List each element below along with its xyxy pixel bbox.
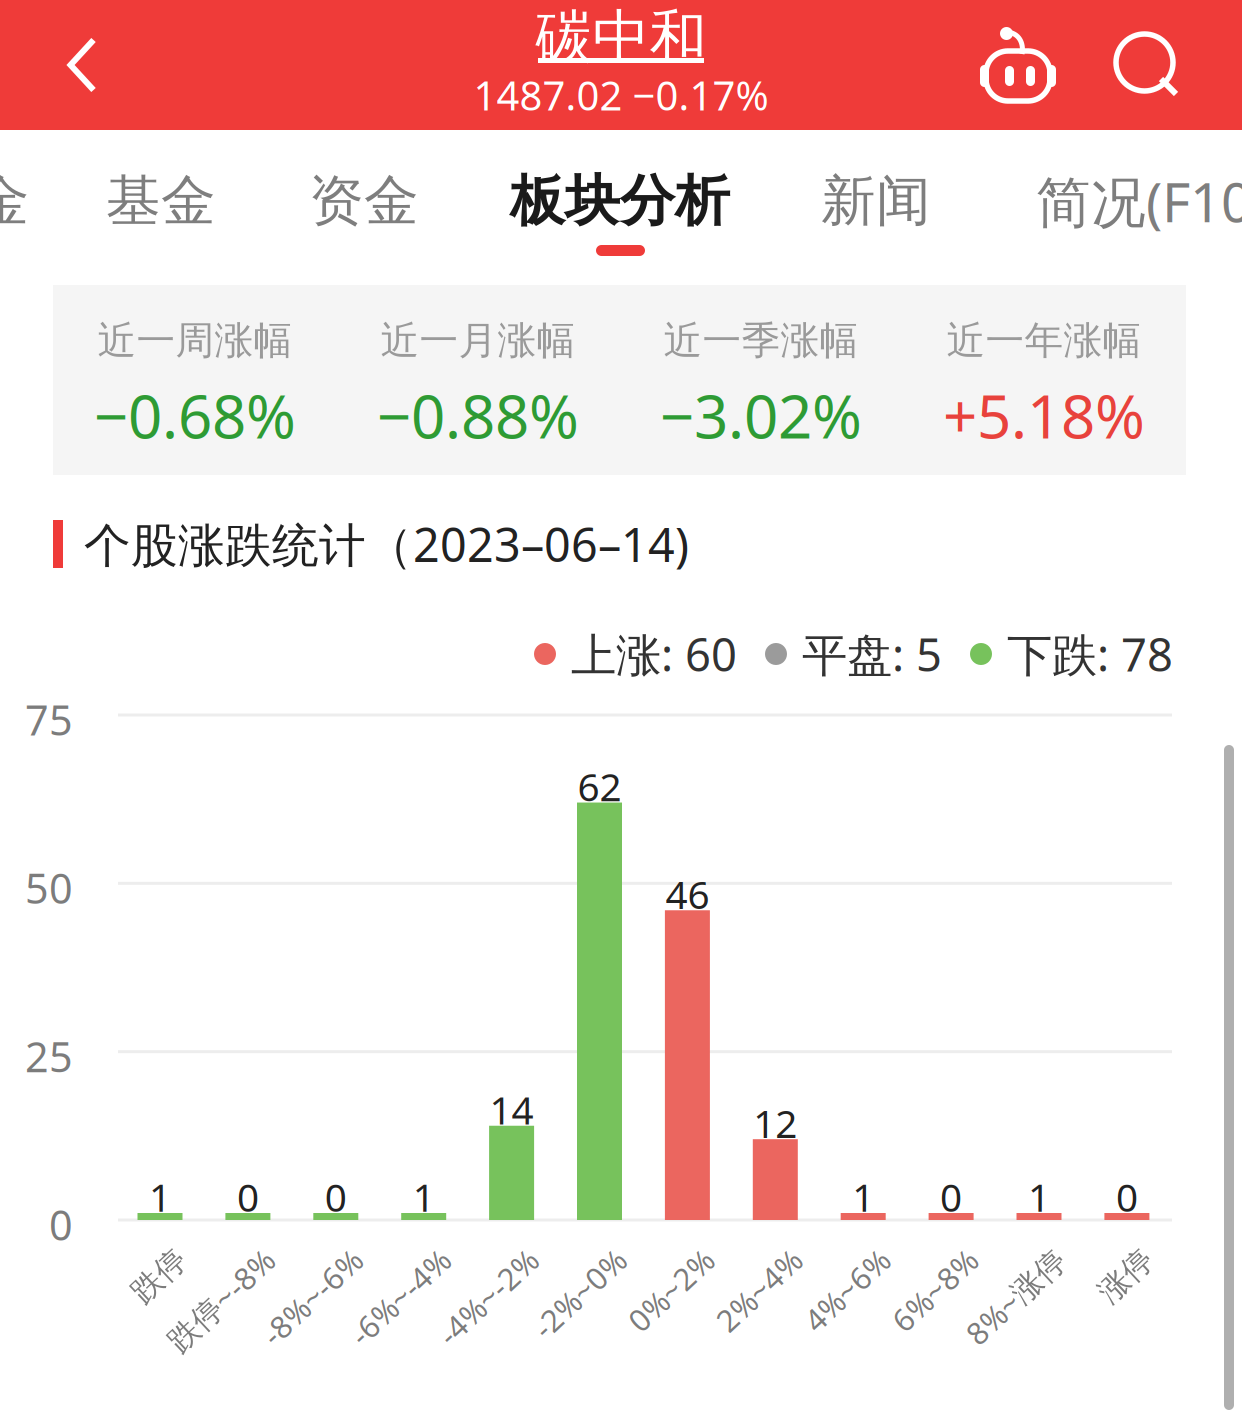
staticText: 2%~4%	[679, 1240, 783, 1280]
staticText: -6%~-4%	[308, 1240, 432, 1280]
staticText: 25	[25, 1029, 73, 1084]
staticText: 金	[0, 167, 29, 234]
button[interactable]: Search	[1093, 11, 1203, 121]
staticText: 0	[940, 1171, 962, 1222]
staticText: 下跌: 78	[1007, 624, 1173, 684]
staticText: 46	[665, 868, 709, 920]
staticText: 1487.02 −0.17%	[473, 68, 768, 121]
staticText: 近一年涨幅	[946, 317, 1141, 364]
staticText: 上涨: 60	[571, 624, 737, 684]
staticText: 板块分析	[510, 167, 730, 234]
staticText: 近一月涨幅	[380, 317, 575, 364]
button[interactable]: 资金	[199, 149, 529, 253]
staticText: 62	[577, 760, 621, 812]
staticText: 12	[753, 1097, 797, 1148]
staticText: 50	[25, 860, 73, 915]
staticText: 0%~2%	[591, 1240, 695, 1280]
staticText: -8%~-6%	[220, 1240, 344, 1280]
button[interactable]: 新闻	[711, 149, 1041, 253]
staticText: 基金	[106, 167, 216, 234]
staticText: 1	[1028, 1171, 1050, 1222]
staticText: 跌停	[106, 1241, 168, 1279]
staticText: 1	[852, 1171, 874, 1222]
staticText: 0	[237, 1171, 259, 1222]
button[interactable]: Back	[27, 10, 137, 120]
button[interactable]: AI assistant	[963, 11, 1073, 121]
staticText: 近一季涨幅	[663, 317, 858, 364]
button[interactable]: 板块分析	[455, 149, 785, 253]
staticText: 跌停~-8%	[123, 1240, 256, 1280]
staticText: −0.68%	[94, 375, 296, 455]
staticText: 75	[25, 692, 73, 747]
staticText: 0	[1116, 1171, 1138, 1222]
staticText: 简况(F10	[1036, 165, 1242, 237]
staticText: 1	[149, 1171, 171, 1222]
staticText: 新闻	[821, 167, 931, 234]
staticText: -4%~-2%	[396, 1240, 520, 1280]
staticText: 资金	[309, 167, 419, 234]
staticText: 1	[413, 1171, 435, 1222]
staticText: 涨停	[1073, 1241, 1135, 1279]
staticText: 14	[490, 1084, 534, 1135]
staticText: −3.02%	[660, 375, 862, 455]
staticText: −0.88%	[377, 375, 579, 455]
button[interactable]: 金	[0, 149, 167, 253]
staticText: +5.18%	[943, 375, 1145, 455]
staticText: 碳中和	[535, 2, 706, 72]
staticText: 0	[49, 1197, 73, 1252]
staticText: 6%~8%	[855, 1240, 959, 1280]
staticText: 0	[325, 1171, 347, 1222]
staticText: 个股涨跌统计（2023–06–14)	[84, 513, 689, 575]
staticText: -2%~0%	[493, 1240, 607, 1280]
button[interactable]: 简况(F10	[979, 149, 1242, 253]
staticText: 4%~6%	[767, 1240, 871, 1280]
button[interactable]: 基金	[0, 149, 326, 253]
staticText: 平盘: 5	[802, 624, 942, 684]
staticText: 8%~涨停	[924, 1240, 1047, 1280]
staticText: 近一周涨幅	[97, 317, 292, 364]
